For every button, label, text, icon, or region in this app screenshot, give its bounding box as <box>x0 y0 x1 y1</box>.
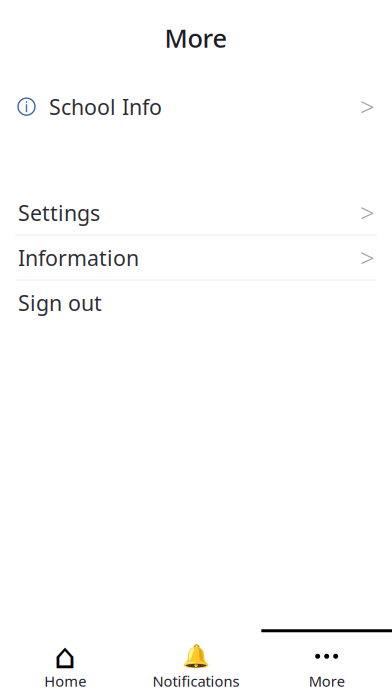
button[interactable]: Settings <box>0 191 392 235</box>
button[interactable]: Information <box>0 236 392 280</box>
staticText: > <box>360 90 374 123</box>
staticText: Settings <box>18 198 100 227</box>
staticText: i <box>24 97 28 116</box>
button[interactable]: Notifications <box>131 632 261 696</box>
button[interactable]: Home <box>0 632 131 696</box>
staticText: > <box>360 241 374 274</box>
staticText: More <box>164 21 227 55</box>
staticText: School Info <box>49 92 162 121</box>
staticText: ⌂ <box>54 637 76 676</box>
staticText: Information <box>18 243 139 272</box>
button[interactable]: Sign out <box>0 281 392 325</box>
staticText: Sign out <box>18 288 102 317</box>
staticText: Notifications <box>152 671 239 691</box>
staticText: Home <box>44 671 86 691</box>
staticText: > <box>360 196 374 229</box>
staticText: 🔔 <box>182 643 210 669</box>
button[interactable]: More <box>261 632 392 696</box>
button[interactable]: i <box>0 85 392 129</box>
staticText: More <box>309 671 345 691</box>
